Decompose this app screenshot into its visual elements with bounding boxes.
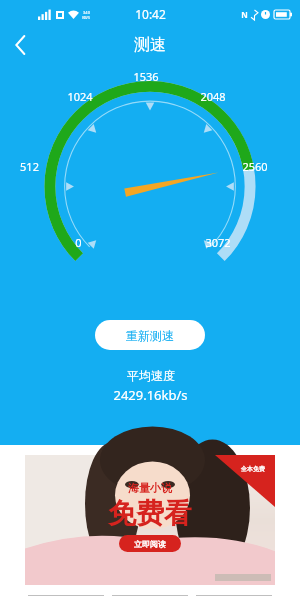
staticText: 0 [75,235,82,250]
button[interactable]: 重新测速 [95,320,205,350]
staticText: 平均速度 [127,368,175,383]
staticText: 2429.16kb/s [113,386,188,404]
staticText: 全本免费 [241,465,265,473]
button[interactable]: 全本免费 [25,455,275,585]
button[interactable]: Back [0,28,40,62]
staticText: 1024 [67,89,93,104]
staticText: 海量小说 [128,481,172,495]
staticText: 重新测速 [126,328,174,343]
staticText: KB/S [82,15,90,20]
staticText: 512 [20,159,39,174]
staticText: 免费看 [108,496,192,531]
button[interactable]: 立即阅读 [119,535,181,552]
staticText: 2560 [242,159,268,174]
staticText: 10:42 [135,6,166,22]
staticText: 1536 [133,69,159,84]
staticText: 2048 [200,89,226,104]
staticText: 340 [83,10,90,15]
staticText: 测速 [134,35,166,55]
staticText: N [241,9,248,20]
staticText: 立即阅读 [134,539,166,549]
staticText: 3072 [205,235,231,250]
